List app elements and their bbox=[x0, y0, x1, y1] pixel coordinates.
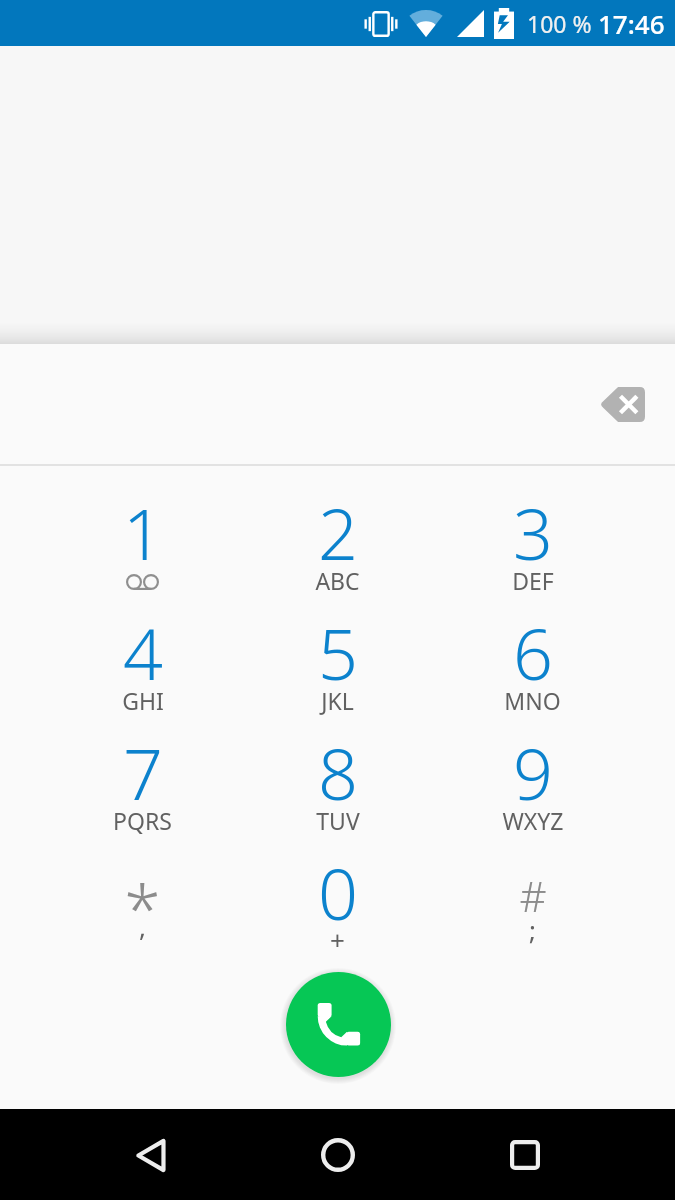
button[interactable]: # bbox=[435, 826, 630, 946]
staticText: * bbox=[124, 862, 161, 952]
staticText: WXYZ bbox=[502, 805, 564, 836]
button[interactable]: 9 bbox=[435, 706, 630, 826]
button[interactable]: 8 bbox=[240, 706, 435, 826]
button[interactable]: * bbox=[45, 826, 240, 946]
button[interactable]: 4 bbox=[45, 586, 240, 706]
button[interactable]: 7 bbox=[45, 706, 240, 826]
staticText: 3 bbox=[513, 485, 553, 580]
staticText: DEF bbox=[512, 565, 554, 596]
staticText: 1 bbox=[123, 485, 163, 580]
staticText: ABC bbox=[315, 565, 360, 596]
staticText: 4 bbox=[123, 605, 163, 700]
staticText: 5 bbox=[318, 605, 358, 700]
staticText: 8 bbox=[318, 725, 358, 820]
button[interactable]: Home bbox=[298, 1115, 378, 1195]
staticText: MNO bbox=[504, 685, 561, 716]
staticText: GHI bbox=[122, 685, 164, 716]
staticText: 2 bbox=[318, 485, 358, 580]
staticText: # bbox=[519, 867, 547, 924]
staticText: + bbox=[330, 922, 345, 957]
button[interactable]: Back bbox=[110, 1115, 190, 1195]
staticText: 100 % bbox=[527, 8, 592, 39]
button[interactable]: Call bbox=[286, 972, 391, 1077]
staticText: 17:46 bbox=[598, 6, 665, 41]
staticText: 7 bbox=[123, 725, 163, 820]
staticText: 6 bbox=[513, 605, 553, 700]
staticText: 0 bbox=[318, 845, 358, 940]
button[interactable]: 1 bbox=[45, 466, 240, 586]
button[interactable]: Recent apps bbox=[485, 1115, 565, 1195]
button[interactable]: 5 bbox=[240, 586, 435, 706]
staticText: ; bbox=[529, 912, 536, 947]
button[interactable]: 3 bbox=[435, 466, 630, 586]
button[interactable]: Backspace bbox=[584, 372, 660, 436]
button[interactable]: 0 bbox=[240, 826, 435, 946]
button[interactable]: 6 bbox=[435, 586, 630, 706]
staticText: PQRS bbox=[113, 805, 172, 836]
staticText: , bbox=[139, 909, 146, 944]
staticText: JKL bbox=[321, 685, 354, 716]
staticText: TUV bbox=[316, 805, 360, 836]
staticText: 9 bbox=[513, 725, 553, 820]
button[interactable]: 2 bbox=[240, 466, 435, 586]
